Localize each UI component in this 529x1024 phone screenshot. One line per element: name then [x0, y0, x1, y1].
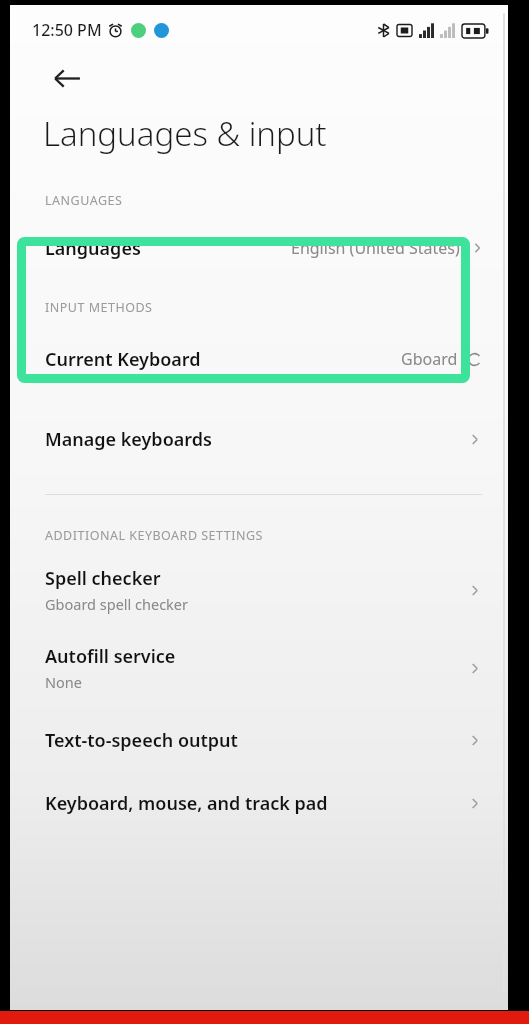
- staticText: Languages: [45, 236, 141, 261]
- staticText: Text-to-speech output: [45, 728, 238, 753]
- button[interactable]: Text-to-speech output: [10, 728, 508, 753]
- button[interactable]: Back: [44, 55, 90, 101]
- staticText: Languages & input: [43, 111, 327, 156]
- staticText: Current Keyboard: [45, 347, 201, 372]
- button[interactable]: Keyboard, mouse, and track pad: [10, 791, 508, 816]
- staticText: INPUT METHODS: [45, 299, 153, 316]
- staticText: Gboard: [401, 348, 458, 370]
- staticText: Autofill service: [45, 644, 176, 669]
- staticText: 12:50 PM: [32, 19, 102, 41]
- button[interactable]: Spell checker: [10, 566, 508, 614]
- button[interactable]: Current Keyboard: [10, 338, 508, 380]
- button[interactable]: Autofill service: [10, 644, 508, 692]
- staticText: Keyboard, mouse, and track pad: [45, 791, 328, 816]
- staticText: LANGUAGES: [45, 192, 123, 209]
- button[interactable]: Manage keyboards: [10, 418, 508, 460]
- staticText: Spell checker: [45, 566, 161, 591]
- staticText: None: [45, 672, 82, 692]
- staticText: Gboard spell checker: [45, 594, 189, 614]
- staticText: ADDITIONAL KEYBOARD SETTINGS: [45, 527, 263, 544]
- button[interactable]: Languages: [10, 219, 508, 277]
- staticText: Manage keyboards: [45, 427, 212, 452]
- staticText: English (United States): [291, 237, 460, 259]
